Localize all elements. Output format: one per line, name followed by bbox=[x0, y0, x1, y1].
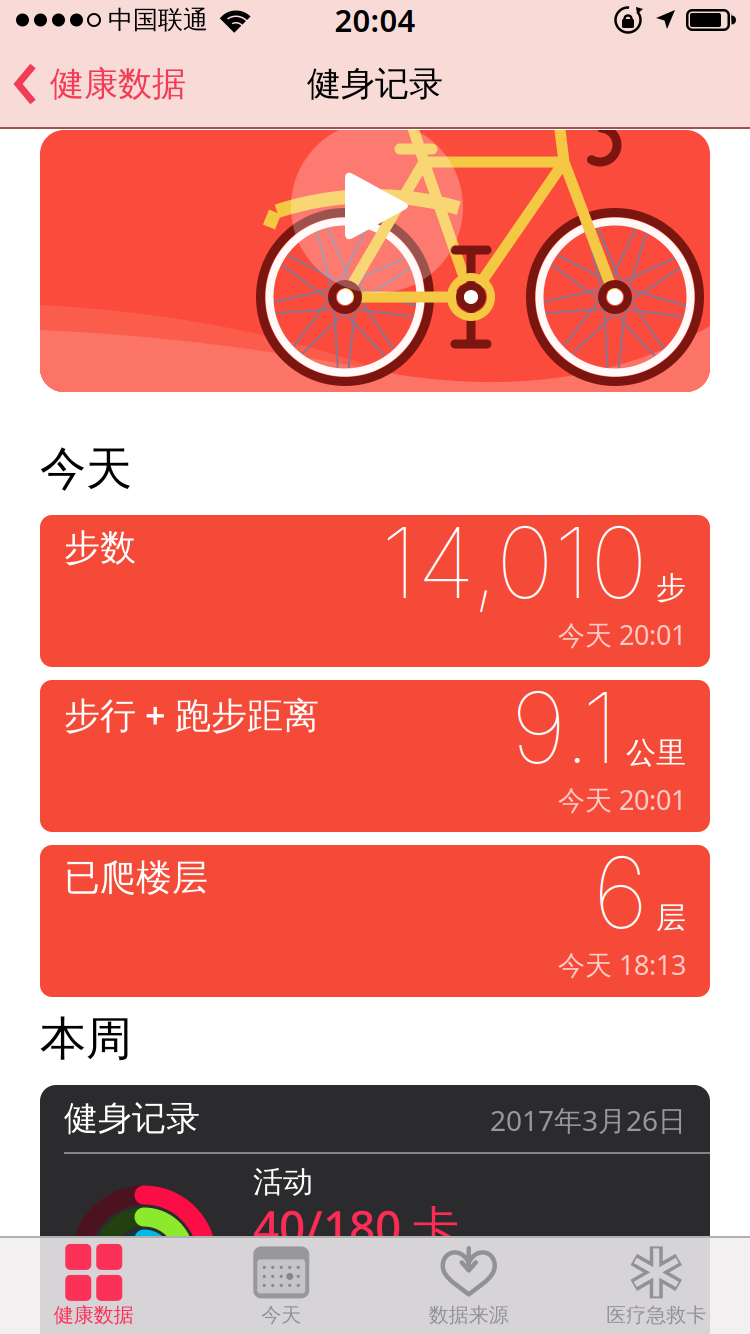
staticText: 步 bbox=[656, 569, 686, 607]
staticText: 今天 bbox=[261, 1302, 301, 1328]
staticText: 公里 bbox=[626, 734, 686, 772]
staticText: 6 bbox=[593, 833, 648, 952]
staticText: 健康数据 bbox=[50, 63, 186, 105]
staticText: 今天 20:01 bbox=[558, 616, 686, 653]
staticText: 2017年3月26日 bbox=[490, 1101, 686, 1139]
staticText: 健康数据 bbox=[54, 1302, 134, 1328]
button[interactable]: 返回健康数据 bbox=[0, 40, 186, 128]
staticText: 数据来源 bbox=[429, 1302, 509, 1328]
staticText: 中国联通 bbox=[108, 4, 208, 36]
staticText: 本周 bbox=[40, 1010, 132, 1068]
button[interactable]: 播放健身记录视频 bbox=[40, 130, 710, 392]
staticText: 今天 20:01 bbox=[558, 781, 686, 818]
staticText: 9.1 bbox=[511, 668, 618, 787]
button[interactable]: 已爬楼层 bbox=[40, 845, 710, 997]
staticText: 医疗急救卡 bbox=[606, 1302, 706, 1328]
staticText: 今天 18:13 bbox=[558, 946, 686, 983]
button[interactable]: 健身记录 bbox=[40, 1085, 710, 1334]
staticText: 健身记录 bbox=[64, 1097, 200, 1140]
button[interactable]: 健康数据 bbox=[0, 1236, 187, 1334]
button[interactable]: 医疗急救卡 bbox=[562, 1236, 750, 1334]
staticText: 步数 bbox=[64, 525, 136, 570]
staticText: 20:04 bbox=[334, 0, 415, 41]
staticText: 已爬楼层 bbox=[64, 855, 208, 900]
staticText: 步行 + 跑步距离 bbox=[64, 690, 319, 739]
staticText: 14,010 bbox=[381, 503, 648, 622]
button[interactable]: 数据来源 bbox=[375, 1236, 562, 1334]
staticText: 健身记录 bbox=[307, 63, 443, 105]
staticText: 40/180 卡 bbox=[253, 1195, 459, 1258]
staticText: 今天 bbox=[40, 440, 132, 498]
staticText: 层 bbox=[656, 899, 686, 937]
button[interactable]: 今天 bbox=[187, 1236, 375, 1334]
button[interactable]: 步行 + 跑步距离 bbox=[40, 680, 710, 832]
staticText: 活动 bbox=[253, 1163, 313, 1201]
button[interactable]: 步数 bbox=[40, 515, 710, 667]
